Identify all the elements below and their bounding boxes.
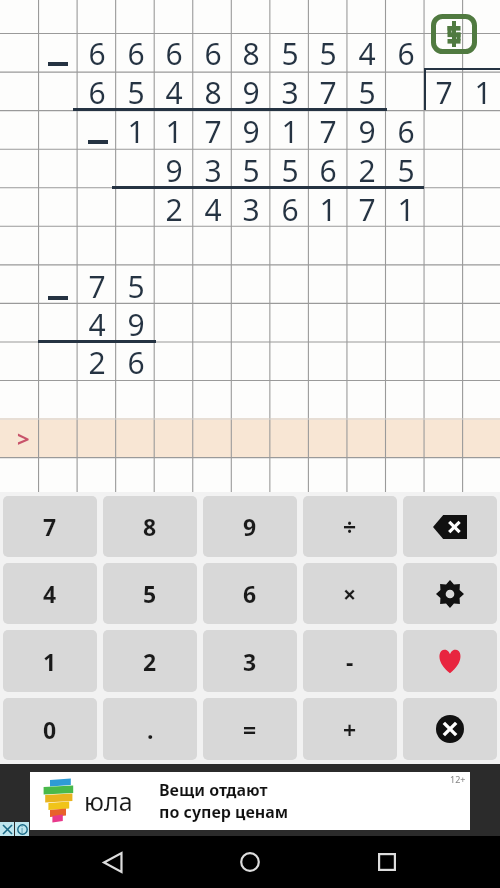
button[interactable]: 5 xyxy=(103,563,197,624)
staticText: 5 xyxy=(242,150,260,189)
button[interactable]: ÷ xyxy=(303,496,397,557)
staticText: 3 xyxy=(242,189,260,228)
button[interactable]: 8 xyxy=(103,496,197,557)
staticText: 6 xyxy=(397,111,415,150)
staticText: 3 xyxy=(243,646,257,677)
staticText: 5 xyxy=(127,72,145,111)
staticText: 2 xyxy=(358,150,376,189)
staticText: 2 xyxy=(143,646,157,677)
staticText: 1 xyxy=(165,111,183,150)
staticText: 8 xyxy=(204,72,222,111)
button[interactable]: Backspace xyxy=(403,496,497,557)
staticText: 6 xyxy=(88,72,106,111)
staticText: Вещи отдают xyxy=(159,779,268,801)
staticText: 4 xyxy=(88,304,106,343)
staticText: 7 xyxy=(319,111,337,150)
button[interactable]: - xyxy=(303,630,397,692)
staticText: 1 xyxy=(281,111,299,150)
button[interactable]: 9 xyxy=(203,496,297,557)
staticText: по супер ценам xyxy=(159,801,289,823)
staticText: 1 xyxy=(43,646,57,677)
staticText: 9 xyxy=(358,111,376,150)
button[interactable]: Close ad xyxy=(0,822,14,836)
staticText: 5 xyxy=(281,150,299,189)
staticText: 5 xyxy=(127,266,145,305)
staticText: 2 xyxy=(165,189,183,228)
staticText: × xyxy=(343,578,357,609)
staticText: 1 xyxy=(397,189,415,228)
staticText: 1 xyxy=(127,111,145,150)
staticText: 5 xyxy=(358,72,376,111)
staticText: 9 xyxy=(165,150,183,189)
staticText: 8 xyxy=(143,511,157,542)
button[interactable]: юла xyxy=(0,764,500,836)
staticText: 6 xyxy=(88,33,106,72)
staticText: 6 xyxy=(204,33,222,72)
button[interactable]: Ad info xyxy=(15,822,29,836)
staticText: 4 xyxy=(43,578,57,609)
button[interactable]: 1 xyxy=(3,630,97,692)
staticText: 7 xyxy=(204,111,222,150)
button[interactable]: 3 xyxy=(203,630,297,692)
button[interactable]: 6 xyxy=(203,563,297,624)
staticText: 9 xyxy=(127,304,145,343)
staticText: = xyxy=(243,714,257,745)
staticText: 7 xyxy=(319,72,337,111)
staticText: 6 xyxy=(397,33,415,72)
staticText: юла xyxy=(84,784,133,818)
button[interactable]: = xyxy=(203,698,297,760)
button[interactable]: . xyxy=(103,698,197,760)
staticText: 5 xyxy=(143,578,157,609)
staticText: 6 xyxy=(127,342,145,381)
staticText: ÷ xyxy=(343,511,357,542)
button[interactable]: 0 xyxy=(3,698,97,760)
staticText: 9 xyxy=(242,72,260,111)
button[interactable]: > xyxy=(8,420,38,456)
staticText: 2 xyxy=(88,342,106,381)
staticText: 9 xyxy=(243,511,257,542)
staticText: 6 xyxy=(281,189,299,228)
button[interactable]: Premium xyxy=(428,8,480,60)
staticText: 7 xyxy=(43,511,57,542)
button[interactable]: Clear xyxy=(403,698,497,760)
staticText: 7 xyxy=(435,72,453,111)
button[interactable]: Recents xyxy=(363,838,411,886)
button[interactable]: × xyxy=(303,563,397,624)
button[interactable]: 7 xyxy=(3,496,97,557)
staticText: 12+ xyxy=(450,773,466,785)
staticText: 4 xyxy=(204,189,222,228)
staticText: 6 xyxy=(127,33,145,72)
staticText: 6 xyxy=(319,150,337,189)
staticText: 4 xyxy=(358,33,376,72)
staticText: 3 xyxy=(204,150,222,189)
button[interactable]: Settings xyxy=(403,563,497,624)
staticText: 5 xyxy=(319,33,337,72)
staticText: 5 xyxy=(281,33,299,72)
staticText: 7 xyxy=(88,266,106,305)
button[interactable]: Home xyxy=(226,838,274,886)
button[interactable]: 2 xyxy=(103,630,197,692)
staticText: 6 xyxy=(165,33,183,72)
staticText: 8 xyxy=(242,33,260,72)
staticText: - xyxy=(346,646,354,677)
staticText: 0 xyxy=(43,714,57,745)
button[interactable]: Favorite xyxy=(403,630,497,692)
staticText: > xyxy=(17,423,30,453)
staticText: 7 xyxy=(358,189,376,228)
button[interactable]: Back xyxy=(89,838,137,886)
staticText: 1 xyxy=(474,72,492,111)
staticText: 4 xyxy=(165,72,183,111)
staticText: 5 xyxy=(397,150,415,189)
button[interactable]: + xyxy=(303,698,397,760)
staticText: 1 xyxy=(319,189,337,228)
staticText: . xyxy=(147,714,154,745)
staticText: + xyxy=(343,714,357,745)
staticText: i xyxy=(21,824,24,835)
button[interactable]: 4 xyxy=(3,563,97,624)
staticText: 6 xyxy=(243,578,257,609)
staticText: 3 xyxy=(281,72,299,111)
staticText: 9 xyxy=(242,111,260,150)
